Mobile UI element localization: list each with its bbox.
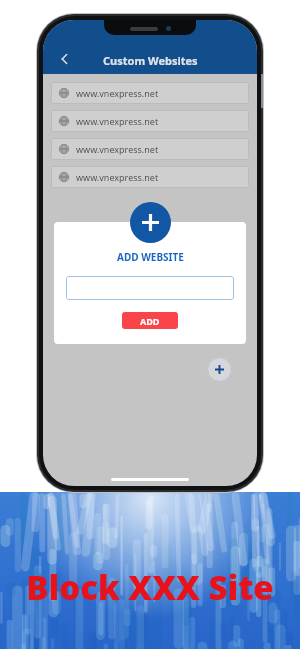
- button[interactable]: www.vnexpress.net: [51, 138, 249, 160]
- button[interactable]: Add website: [207, 357, 232, 382]
- button[interactable]: www.vnexpress.net: [51, 166, 249, 188]
- button[interactable]: ADD: [122, 312, 178, 329]
- button[interactable]: [66, 276, 234, 300]
- staticText: Custom Websites: [103, 53, 198, 68]
- button[interactable]: www.vnexpress.net: [51, 110, 249, 132]
- staticText: ADD WEBSITE: [117, 250, 184, 264]
- staticText: www.vnexpress.net: [76, 171, 159, 183]
- staticText: www.vnexpress.net: [76, 115, 159, 127]
- button[interactable]: Add: [130, 202, 171, 243]
- staticText: Block XXX Site: [26, 565, 274, 610]
- staticText: www.vnexpress.net: [76, 87, 159, 99]
- button[interactable]: Back: [53, 47, 77, 71]
- staticText: www.vnexpress.net: [76, 143, 159, 155]
- button[interactable]: www.vnexpress.net: [51, 82, 249, 104]
- staticText: ADD: [140, 315, 160, 327]
